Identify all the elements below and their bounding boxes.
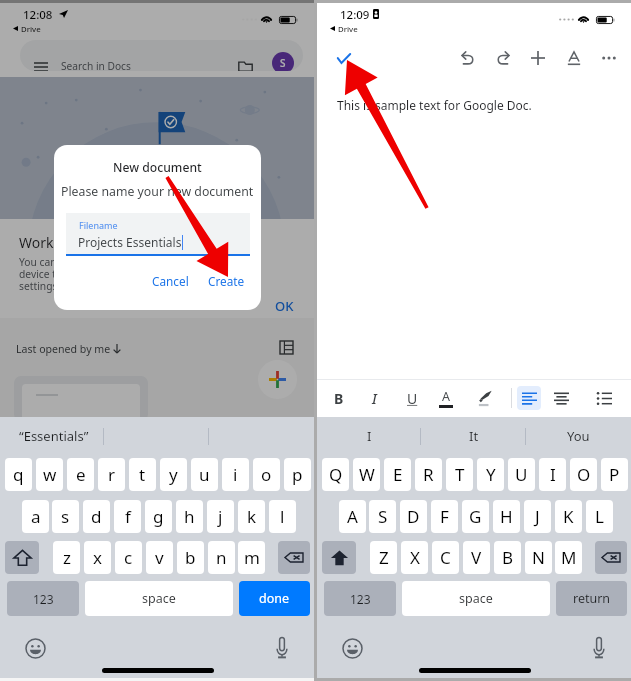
button[interactable]: g: [145, 500, 172, 533]
staticText: Drive: [21, 24, 41, 35]
button[interactable]: Account: [272, 52, 294, 71]
button[interactable]: Insert: [525, 45, 551, 71]
button[interactable]: m: [238, 541, 265, 574]
button[interactable]: More options: [596, 45, 622, 71]
button[interactable]: U: [399, 385, 425, 411]
button[interactable]: f: [114, 500, 141, 533]
button[interactable]: Shift: [5, 541, 39, 574]
button[interactable]: [14, 376, 148, 421]
button[interactable]: B: [494, 541, 521, 574]
button[interactable]: F: [431, 500, 458, 533]
button[interactable]: Search in Docs: [20, 40, 303, 71]
button[interactable]: You: [526, 417, 631, 455]
button[interactable]: Dictate: [269, 634, 295, 660]
button[interactable]: n: [208, 541, 235, 574]
button[interactable]: space: [85, 581, 233, 616]
button[interactable]: Create: [202, 270, 251, 292]
button[interactable]: Emoji: [22, 635, 48, 661]
button[interactable]: N: [525, 541, 552, 574]
button[interactable]: H: [493, 500, 520, 533]
staticText: w: [43, 463, 57, 486]
button[interactable]: j: [207, 500, 234, 533]
button[interactable]: It: [421, 417, 526, 455]
button[interactable]: Align left: [517, 386, 541, 410]
button[interactable]: space: [402, 581, 550, 616]
button[interactable]: K: [555, 500, 582, 533]
staticText: K: [563, 505, 574, 528]
button[interactable]: R: [415, 458, 442, 491]
button[interactable]: w: [36, 458, 63, 491]
button[interactable]: J: [524, 500, 551, 533]
button[interactable]: B: [326, 385, 352, 411]
button[interactable]: Text format: [561, 45, 587, 71]
button[interactable]: T: [446, 458, 473, 491]
button[interactable]: return: [556, 581, 627, 616]
button[interactable]: Backspace: [278, 541, 310, 574]
button[interactable]: e: [67, 458, 94, 491]
button[interactable]: U: [508, 458, 535, 491]
button[interactable]: OK: [275, 297, 294, 315]
button[interactable]: L: [586, 500, 613, 533]
button[interactable]: List view: [280, 341, 293, 354]
button[interactable]: d: [83, 500, 110, 533]
button[interactable]: Y: [477, 458, 504, 491]
button[interactable]: I: [317, 417, 421, 455]
button[interactable]: W: [353, 458, 380, 491]
button[interactable]: i: [222, 458, 249, 491]
button[interactable]: Bulleted list: [592, 386, 616, 410]
button[interactable]: Cancel: [146, 270, 195, 292]
button[interactable]: Z: [370, 541, 397, 574]
button[interactable]: u: [191, 458, 218, 491]
button[interactable]: h: [176, 500, 203, 533]
button[interactable]: E: [384, 458, 411, 491]
button[interactable]: r: [98, 458, 125, 491]
button[interactable]: done: [239, 581, 310, 616]
button[interactable]: G: [462, 500, 489, 533]
button[interactable]: t: [129, 458, 156, 491]
button[interactable]: b: [177, 541, 204, 574]
staticText: q: [13, 463, 24, 486]
button[interactable]: C: [432, 541, 459, 574]
button[interactable]: s: [52, 500, 79, 533]
staticText: return: [573, 590, 611, 607]
button[interactable]: X: [401, 541, 428, 574]
button[interactable]: P: [601, 458, 628, 491]
button[interactable]: O: [570, 458, 597, 491]
button[interactable]: q: [5, 458, 32, 491]
button[interactable]: I: [539, 458, 566, 491]
button[interactable]: Redo: [490, 45, 516, 71]
button[interactable]: Create new document: [258, 360, 297, 399]
button[interactable]: Align centre: [549, 386, 573, 410]
button[interactable]: Done: [331, 45, 357, 71]
button[interactable]: “Essentials”: [0, 417, 104, 455]
button[interactable]: A: [339, 500, 366, 533]
button[interactable]: 123: [7, 581, 79, 616]
button[interactable]: v: [146, 541, 173, 574]
button[interactable]: p: [284, 458, 311, 491]
button[interactable]: z: [53, 541, 80, 574]
button[interactable]: x: [84, 541, 111, 574]
button[interactable]: k: [238, 500, 265, 533]
button[interactable]: 123: [324, 581, 396, 616]
button[interactable]: Undo: [455, 45, 481, 71]
button[interactable]: V: [463, 541, 490, 574]
button[interactable]: o: [253, 458, 280, 491]
button[interactable]: M: [555, 541, 582, 574]
button[interactable]: Emoji: [339, 635, 365, 661]
button[interactable]: I: [361, 385, 387, 411]
button[interactable]: Dictate: [586, 634, 612, 660]
button[interactable]: D: [400, 500, 427, 533]
button[interactable]: c: [115, 541, 142, 574]
button[interactable]: y: [160, 458, 187, 491]
button[interactable]: a: [22, 500, 49, 533]
button[interactable]: l: [269, 500, 296, 533]
button[interactable]: Backspace: [595, 541, 627, 574]
button[interactable]: Shift: [322, 541, 356, 574]
button[interactable]: Q: [322, 458, 349, 491]
button[interactable]: Highlight: [471, 385, 497, 411]
button[interactable]: S: [369, 500, 396, 533]
staticText: A: [347, 505, 358, 528]
button[interactable]: Text colour: [433, 385, 459, 411]
